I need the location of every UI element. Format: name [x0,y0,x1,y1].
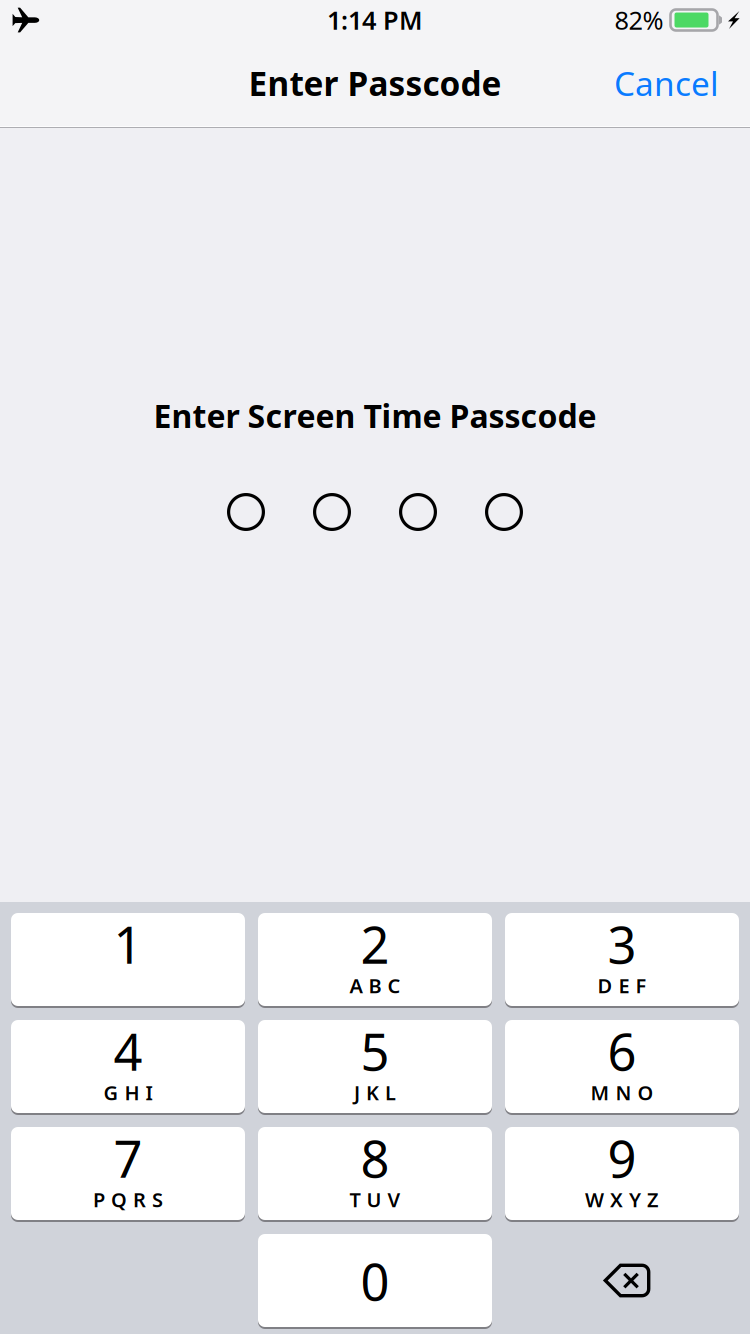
staticText: JKL [354,1079,396,1106]
staticText: 9 [607,1124,636,1192]
button[interactable]: Cancel [596,47,737,119]
button[interactable]: 6 [505,1020,739,1115]
staticText: 4 [113,1017,142,1085]
staticText: 1 [113,910,142,978]
staticText: 3 [607,910,636,978]
button[interactable]: 3 [505,913,739,1008]
staticText: MNO [590,1079,653,1106]
staticText: GHI [103,1079,152,1106]
staticText: 2 [360,910,389,978]
button[interactable]: 0 [258,1234,492,1329]
staticText: DEF [597,972,646,999]
staticText: 8 [360,1124,389,1192]
staticText: ABC [349,972,400,999]
staticText: WXYZ [585,1186,659,1213]
staticText: TUV [349,1186,400,1213]
button[interactable]: 4 [11,1020,245,1115]
button[interactable]: 7 [11,1127,245,1222]
button[interactable]: 5 [258,1020,492,1115]
staticText: 5 [360,1017,389,1085]
staticText: Enter Screen Time Passcode [153,394,596,437]
staticText: 1:14 PM [327,3,423,37]
button[interactable]: 1 [11,913,245,1008]
button[interactable]: 8 [258,1127,492,1222]
staticText: PQRS [93,1186,163,1213]
staticText: 0 [360,1247,389,1315]
button[interactable]: Delete [505,1234,739,1329]
staticText: 6 [607,1017,636,1085]
button[interactable]: 9 [505,1127,739,1222]
staticText: Enter Passcode [248,61,501,105]
staticText: 7 [113,1124,142,1192]
button[interactable]: 2 [258,913,492,1008]
staticText: Cancel [614,61,719,105]
staticText: 82% [614,3,663,37]
